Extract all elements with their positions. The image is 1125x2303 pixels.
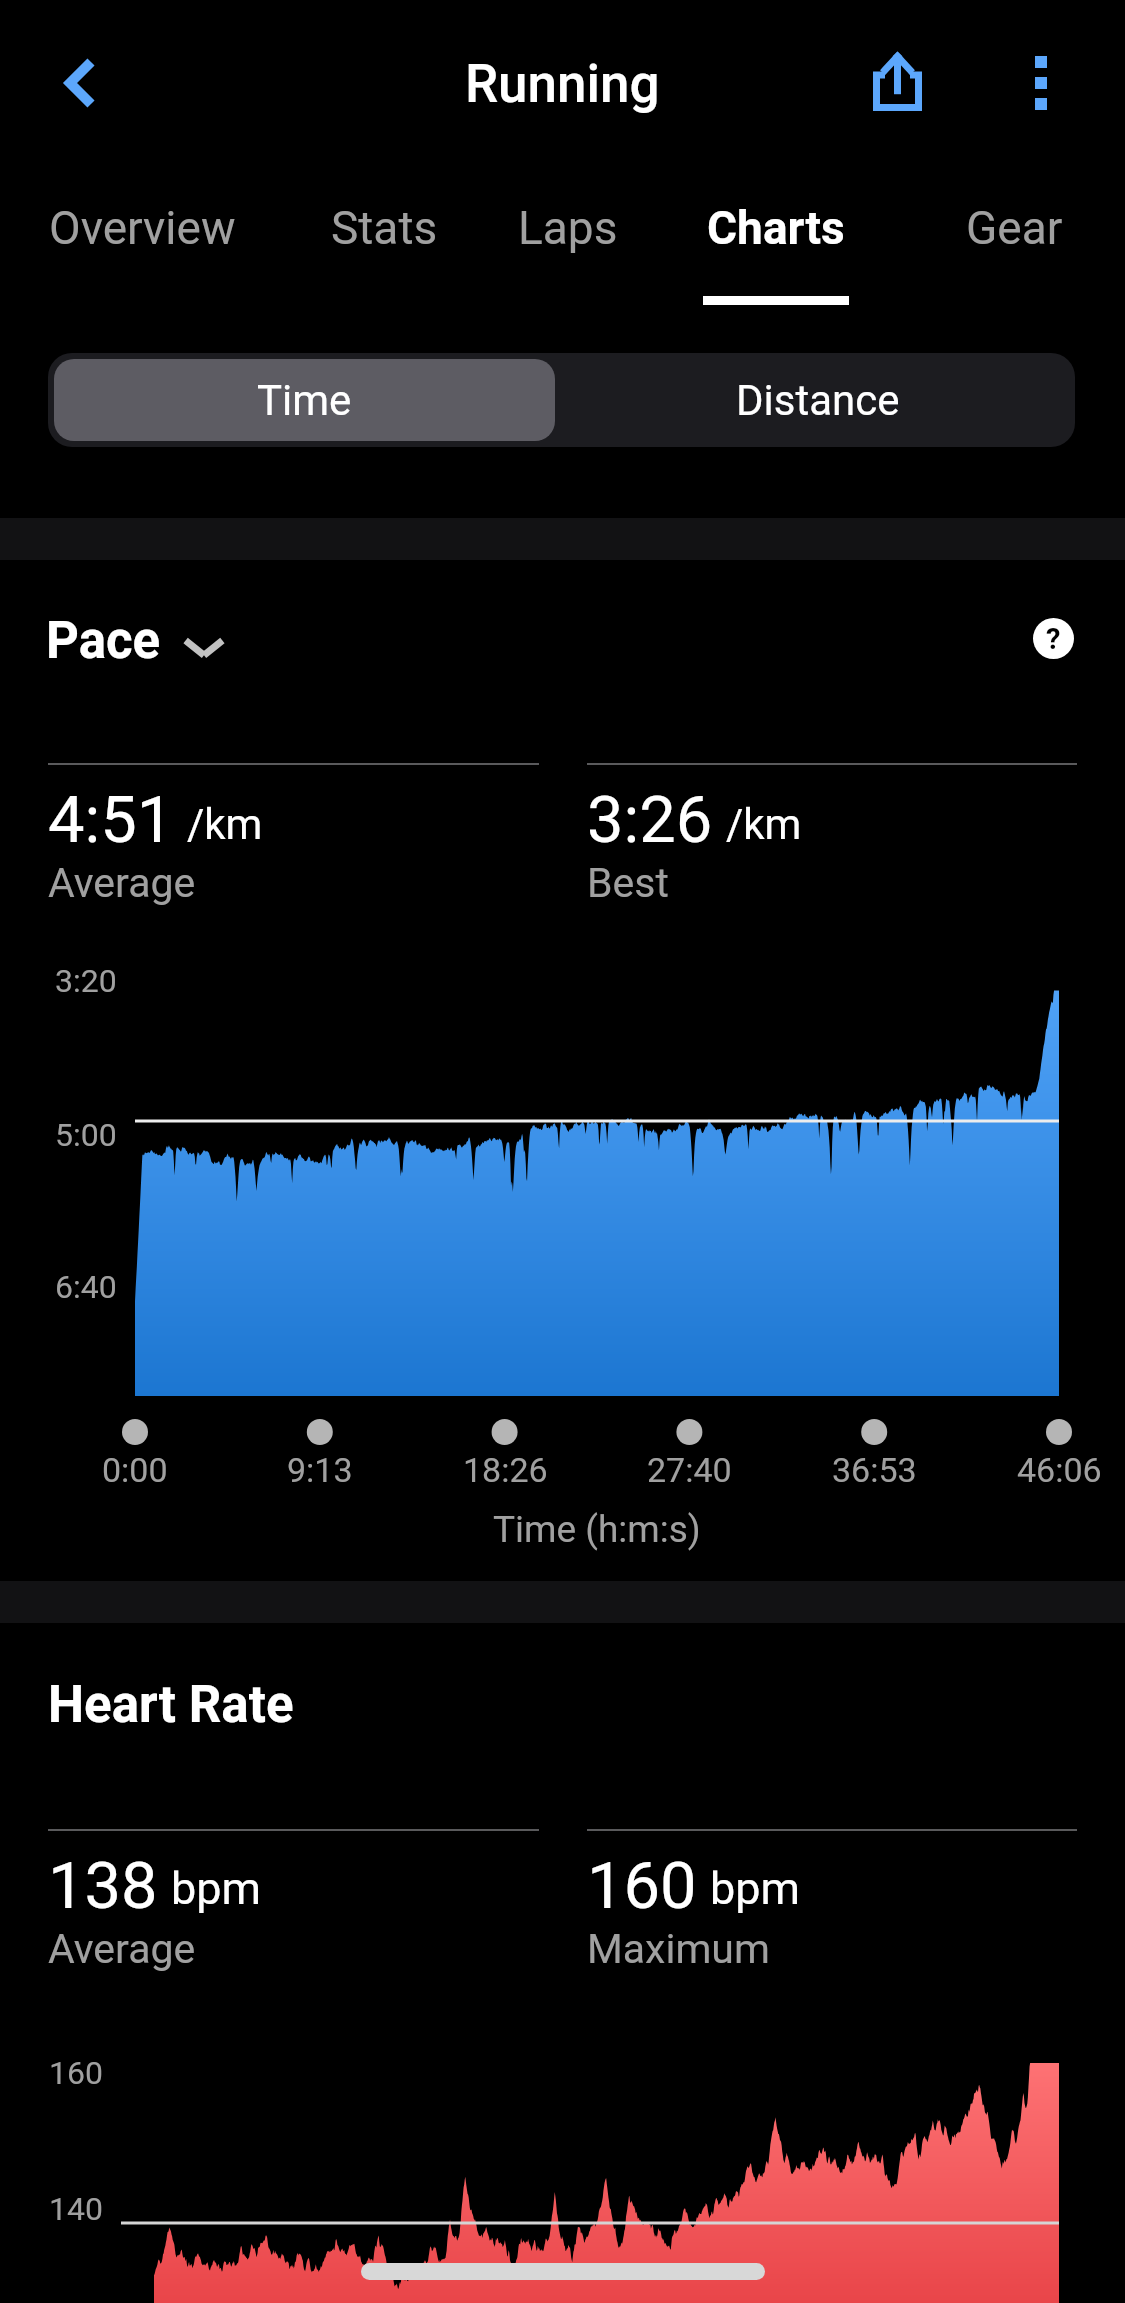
staticText: Gear bbox=[966, 201, 1063, 255]
staticText: 4:51 bbox=[48, 782, 174, 858]
staticText: 5:00 bbox=[55, 1116, 117, 1154]
button[interactable]: Charts bbox=[676, 175, 876, 313]
staticText: Distance bbox=[736, 376, 900, 425]
staticText: Heart Rate bbox=[48, 1675, 294, 1735]
button[interactable]: Help bbox=[1033, 618, 1074, 659]
button[interactable]: Pace bbox=[46, 611, 227, 671]
staticText: Pace bbox=[46, 611, 161, 671]
staticText: Charts bbox=[707, 201, 845, 255]
staticText: 36:53 bbox=[832, 1450, 917, 1490]
staticText: bpm bbox=[171, 1862, 261, 1915]
button[interactable]: Stats bbox=[289, 175, 479, 313]
staticText: 46:06 bbox=[1017, 1450, 1102, 1490]
staticText: 3:26 bbox=[587, 782, 713, 858]
button[interactable]: Overview bbox=[8, 175, 276, 313]
staticText: Average bbox=[48, 859, 196, 907]
staticText: Overview bbox=[49, 201, 236, 255]
staticText: /km bbox=[187, 800, 263, 849]
staticText: Time (h:m:s) bbox=[493, 1508, 701, 1551]
button[interactable]: Distance bbox=[561, 353, 1075, 447]
button[interactable]: Time bbox=[54, 359, 555, 441]
button[interactable]: More options bbox=[982, 24, 1100, 142]
button[interactable]: Share bbox=[838, 24, 956, 142]
staticText: 9:13 bbox=[287, 1450, 353, 1490]
staticText: ? bbox=[1046, 622, 1061, 656]
staticText: 6:40 bbox=[55, 1268, 117, 1306]
staticText: bpm bbox=[710, 1862, 800, 1915]
staticText: 160 bbox=[49, 2054, 103, 2092]
staticText: Laps bbox=[518, 201, 618, 255]
staticText: 160 bbox=[587, 1848, 697, 1924]
staticText: Maximum bbox=[587, 1925, 770, 1973]
staticText: Time bbox=[257, 376, 352, 425]
button[interactable]: Gear bbox=[919, 175, 1109, 313]
button[interactable]: Laps bbox=[478, 175, 658, 313]
staticText: 138 bbox=[48, 1848, 158, 1924]
staticText: /km bbox=[726, 800, 802, 849]
staticText: Running bbox=[465, 53, 660, 115]
button[interactable]: Back bbox=[21, 24, 139, 142]
staticText: 18:26 bbox=[463, 1450, 548, 1490]
staticText: 3:20 bbox=[55, 962, 117, 1000]
staticText: 0:00 bbox=[102, 1450, 168, 1490]
staticText: Average bbox=[48, 1925, 196, 1973]
staticText: Best bbox=[587, 859, 669, 907]
staticText: Stats bbox=[331, 201, 438, 255]
staticText: 140 bbox=[49, 2190, 103, 2228]
staticText: 27:40 bbox=[647, 1450, 732, 1490]
